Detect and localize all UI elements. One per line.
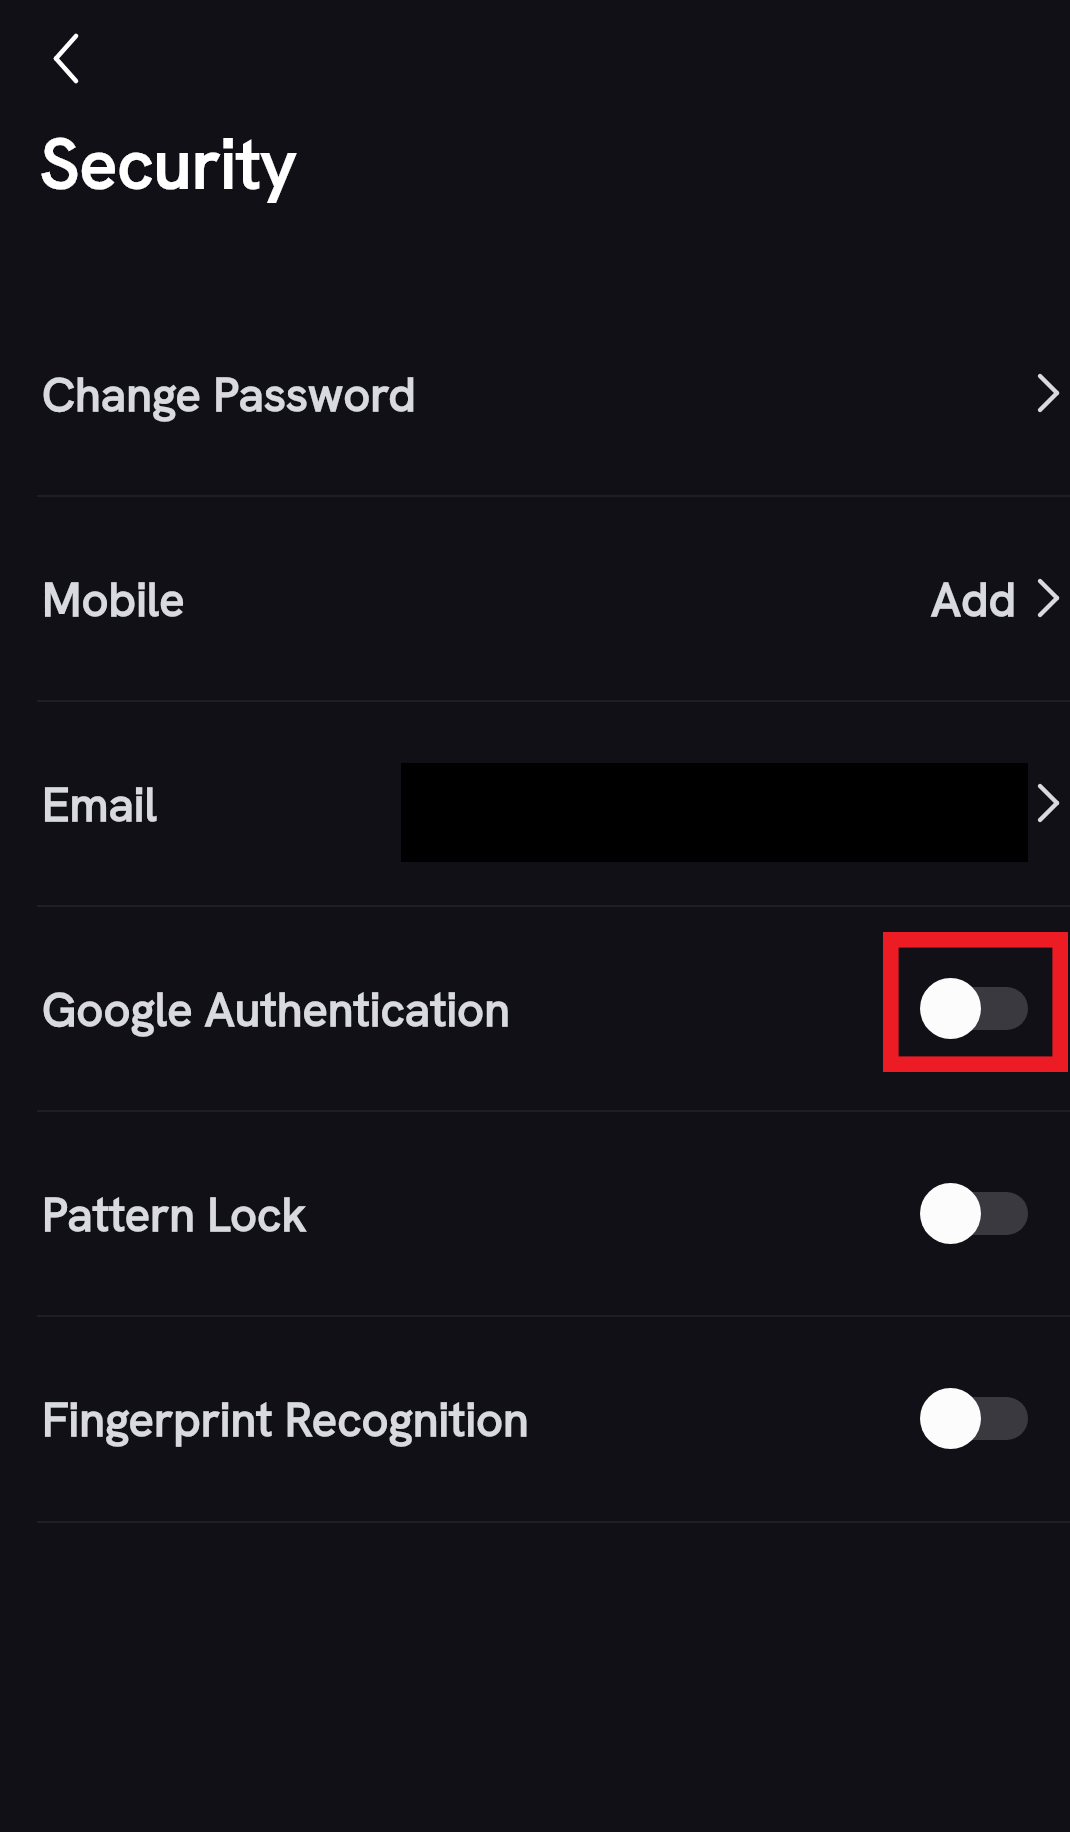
staticText: Change Password: [42, 364, 416, 425]
staticText: Add: [931, 569, 1017, 630]
staticText: Security: [40, 118, 297, 209]
button[interactable]: Google Authentication: [0, 905, 1070, 1110]
staticText: Google Authentication: [42, 979, 510, 1040]
staticText: Pattern Lock: [42, 1184, 307, 1245]
button[interactable]: Fingerprint Recognition switch: [920, 1387, 1028, 1449]
button[interactable]: Pattern Lock: [0, 1110, 1070, 1315]
button[interactable]: Change Password: [0, 290, 1070, 495]
button[interactable]: Email: [0, 700, 1070, 905]
staticText: Mobile: [42, 569, 185, 630]
staticText: Fingerprint Recognition: [42, 1389, 529, 1450]
button[interactable]: Fingerprint Recognition: [0, 1315, 1070, 1520]
button[interactable]: Pattern Lock switch: [920, 1182, 1028, 1244]
button[interactable]: Back: [32, 20, 100, 96]
button[interactable]: Google Authentication switch: [920, 977, 1028, 1039]
button[interactable]: Mobile: [0, 495, 1070, 700]
staticText: Email: [42, 774, 157, 835]
